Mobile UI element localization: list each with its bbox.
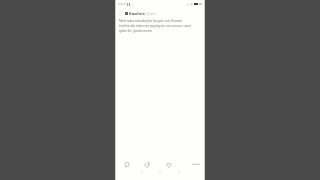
button[interactable]: Retweet	[142, 160, 151, 169]
staticText: Kazılrex	[129, 11, 145, 16]
button[interactable]: Reply	[122, 160, 131, 169]
button[interactable]: Profile photo	[118, 11, 123, 16]
staticText: Merhaba arkadaşlar bugün sizi Xiaomi tel…	[119, 18, 192, 33]
staticText: @kzlrx	[146, 11, 157, 16]
button[interactable]: Share	[190, 160, 199, 169]
button[interactable]: Kazılrex	[125, 11, 157, 16]
button[interactable]: Like	[164, 160, 173, 169]
